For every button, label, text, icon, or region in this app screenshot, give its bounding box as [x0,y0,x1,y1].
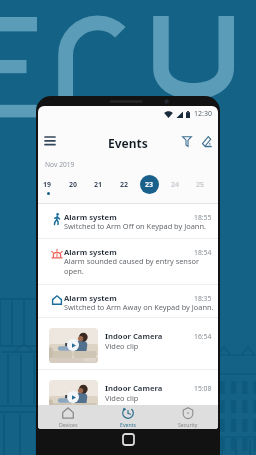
staticText: Alarm sounded caused by entry sensor ope… [64,256,216,276]
staticText: 18:54 [194,248,212,257]
button[interactable]: 21 [89,175,108,194]
button[interactable]: Open navigation menu [40,131,60,151]
button[interactable]: Indoor Camera [38,317,218,369]
button[interactable]: Events [98,405,158,429]
staticText: Switched to Arm Off on Keypad by Joann. [64,221,206,231]
staticText: 19 [43,180,52,190]
staticText: 12:30 [194,109,212,119]
staticText: Events [120,421,137,428]
staticText: Devices [59,421,78,428]
staticText: 18:35 [194,294,212,303]
staticText: Nov 2019 [45,160,75,169]
staticText: 20 [69,180,78,190]
staticText: 24 [171,180,180,190]
staticText: Events [108,135,148,151]
staticText: 15:08 [194,384,212,393]
button[interactable]: 25 [191,175,210,194]
staticText: Alarm system [64,212,117,222]
staticText: 18:55 [194,213,212,222]
button[interactable]: 20 [64,175,83,194]
button[interactable]: Filter events [177,131,197,151]
staticText: Switched to Arm Away on Keypad by Joann. [64,302,214,312]
button[interactable]: Alarm system [38,238,218,284]
staticText: 16:54 [194,332,212,341]
button[interactable]: 24 [166,175,185,194]
button[interactable]: 23 [140,175,159,194]
staticText: 22 [120,180,129,190]
staticText: 21 [94,180,103,190]
button[interactable]: 19 [38,175,57,194]
button[interactable]: 22 [115,175,134,194]
button[interactable]: Indoor Camera [38,369,218,407]
staticText: Video clip [105,341,139,351]
button[interactable]: Alarm system [38,284,218,318]
button[interactable]: Devices [38,405,98,429]
staticText: Security [178,421,198,428]
staticText: Alarm system [64,293,117,303]
button[interactable]: Alarm system [38,203,218,238]
staticText: 25 [196,180,205,190]
staticText: Indoor Camera [105,383,163,393]
button[interactable]: Security [158,405,218,429]
staticText: Video clip [105,393,139,403]
staticText: Indoor Camera [105,331,163,341]
button[interactable]: Edit [197,131,217,151]
staticText: Alarm system [64,247,117,257]
staticText: 23 [145,180,154,190]
